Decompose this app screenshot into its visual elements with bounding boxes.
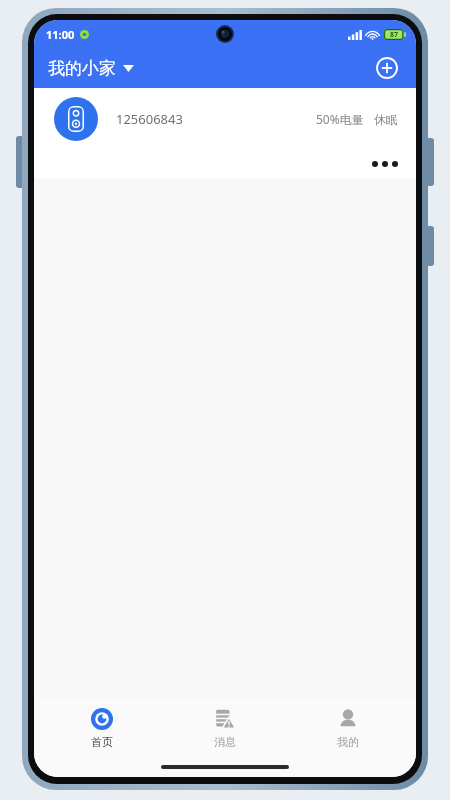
staticText: 消息: [214, 735, 236, 749]
staticText: 125606843: [116, 110, 183, 128]
button[interactable]: 消息: [170, 699, 280, 757]
staticText: 休眠: [374, 112, 398, 127]
staticText: 我的小家: [48, 58, 116, 79]
button[interactable]: 我的小家: [46, 54, 136, 83]
button[interactable]: Add device: [370, 51, 404, 85]
button[interactable]: More options: [368, 152, 402, 176]
staticText: 50%电量: [316, 111, 364, 127]
staticText: 87: [390, 30, 399, 40]
button[interactable]: 我的: [293, 699, 403, 757]
button[interactable]: 首页: [47, 699, 157, 757]
staticText: 11:00: [46, 27, 75, 42]
staticText: 我的: [337, 735, 359, 749]
staticText: 首页: [91, 735, 113, 749]
button[interactable]: 125606843: [34, 88, 416, 178]
